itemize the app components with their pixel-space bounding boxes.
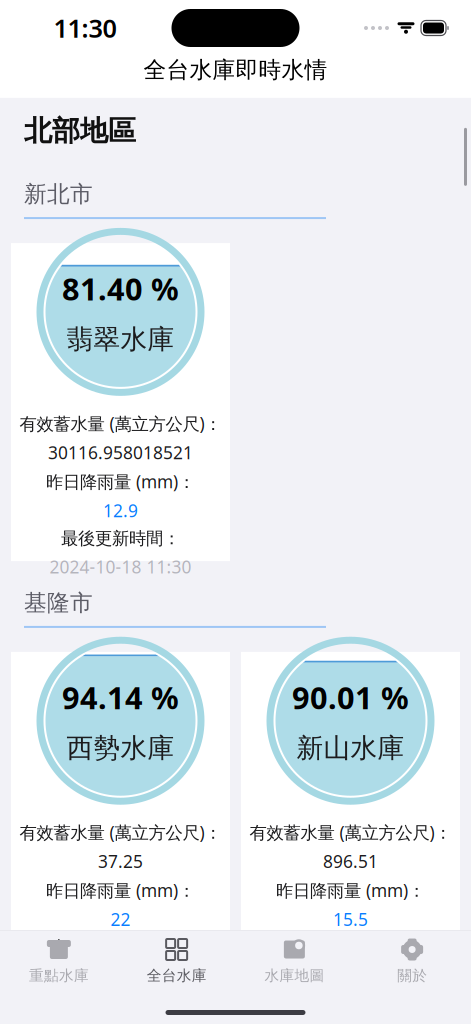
staticText: 新北市 [24,180,93,208]
staticText: 94.14 % [62,677,179,718]
button[interactable]: 全台水庫 [118,930,236,984]
button[interactable]: 水庫地圖 [235,930,353,984]
staticText: 2024-10-18 11:30 [49,555,191,578]
staticText: 有效蓄水量 (萬立方公尺)： [19,821,221,844]
staticText: 關於 [397,966,427,984]
staticText: 37.25 [98,850,143,873]
staticText: 北部地區 [24,114,136,148]
staticText: 12.9 [103,499,138,522]
staticText: 22 [110,908,130,931]
staticText: 11:30 [53,11,116,45]
staticText: 最後更新時間： [61,937,180,958]
staticText: 全台水庫 [147,966,207,984]
button[interactable]: 90.01 % [241,652,460,970]
button[interactable]: 重點水庫 [0,930,118,984]
staticText: 昨日降雨量 (mm)： [276,879,425,902]
staticText: 30116.958018521 [48,441,193,464]
staticText: 最後更新時間： [291,937,410,958]
staticText: 西勢水庫 [66,732,174,764]
staticText: 896.51 [323,850,378,873]
staticText: 翡翠水庫 [66,323,174,356]
staticText: 全台水庫即時水情 [143,56,327,84]
staticText: 有效蓄水量 (萬立方公尺)： [19,412,221,435]
staticText: 81.40 % [62,268,179,309]
staticText: 2024-10-18 11:30 [49,964,191,987]
staticText: 90.01 % [292,677,409,718]
staticText: 新山水庫 [296,732,404,764]
button[interactable]: 94.14 % [11,652,230,970]
staticText: 昨日降雨量 (mm)： [46,470,195,493]
staticText: 2024-10-18 11:30 [279,964,421,987]
button[interactable]: 關於 [353,930,471,984]
staticText: 15.5 [333,908,368,931]
staticText: 昨日降雨量 (mm)： [46,879,195,902]
button[interactable]: 81.40 % [11,243,230,561]
staticText: 最後更新時間： [61,528,180,549]
staticText: 有效蓄水量 (萬立方公尺)： [249,821,451,844]
staticText: 水庫地圖 [264,966,324,984]
staticText: 基隆市 [24,589,93,617]
staticText: 重點水庫 [29,966,89,984]
